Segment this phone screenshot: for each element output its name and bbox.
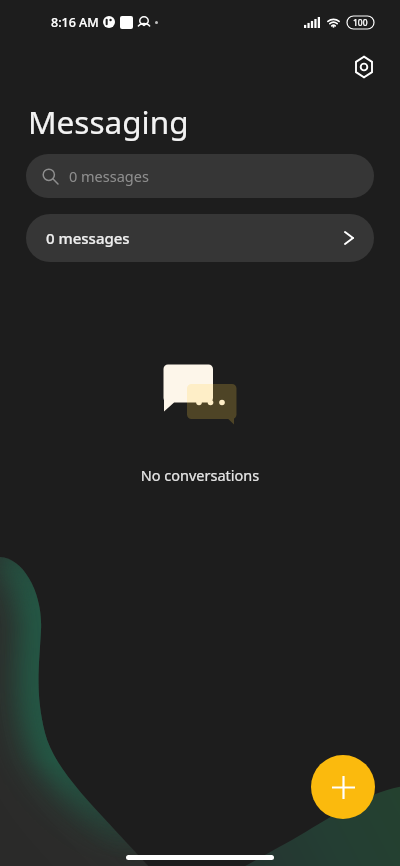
staticText: Messaging: [28, 100, 189, 143]
button[interactable]: 0 messages: [26, 214, 374, 262]
button[interactable]: Settings: [344, 47, 384, 87]
staticText: No conversations: [0, 465, 400, 485]
staticText: 0 messages: [69, 166, 149, 186]
button[interactable]: 0 messages: [26, 154, 374, 198]
button[interactable]: New conversation: [311, 755, 375, 819]
staticText: 100: [353, 17, 368, 29]
staticText: 0 messages: [46, 228, 130, 248]
staticText: 8:16 AM: [51, 14, 99, 31]
